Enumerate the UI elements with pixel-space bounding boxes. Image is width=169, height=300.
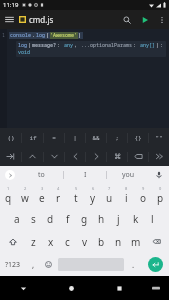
staticText: u	[106, 191, 113, 205]
button[interactable]: 4	[50, 183, 67, 207]
button[interactable]: ""	[149, 128, 169, 147]
button[interactable]: Menu	[0, 10, 19, 29]
button[interactable]: Move left	[65, 147, 85, 166]
button[interactable]: ,	[26, 253, 41, 276]
button[interactable]: n	[110, 230, 127, 253]
button[interactable]: |	[65, 128, 85, 147]
button[interactable]: 9	[135, 183, 152, 207]
staticText: 3	[41, 186, 44, 191]
button[interactable]: z	[25, 230, 42, 253]
button[interactable]: Expand suggestions	[0, 166, 20, 183]
staticText: c	[65, 235, 70, 249]
staticText: console	[10, 32, 32, 39]
staticText: (	[46, 32, 50, 39]
staticText: j	[117, 212, 120, 226]
staticText: :	[57, 42, 64, 49]
staticText: &&	[92, 134, 100, 142]
button[interactable]: l	[144, 207, 161, 230]
button[interactable]: Backspace	[128, 147, 148, 166]
button[interactable]: h	[93, 207, 110, 230]
button[interactable]: .	[126, 253, 141, 276]
button[interactable]: Tab	[0, 147, 21, 166]
staticText: if	[29, 134, 37, 142]
staticText: |	[73, 134, 77, 142]
button[interactable]: More	[149, 147, 169, 166]
button[interactable]: Delete	[144, 230, 169, 253]
staticText: 6	[92, 186, 95, 191]
staticText: 2	[24, 186, 27, 191]
staticText: y	[90, 191, 96, 205]
button[interactable]: v	[76, 230, 93, 253]
staticText: i	[125, 191, 128, 205]
staticText: ?123	[5, 260, 21, 270]
button[interactable]: ()	[0, 128, 21, 147]
button[interactable]: Move up	[22, 147, 43, 166]
staticText: :	[133, 42, 140, 49]
button[interactable]: j	[110, 207, 127, 230]
staticText: .	[32, 32, 36, 39]
button[interactable]: 8	[118, 183, 135, 207]
staticText: z	[31, 235, 36, 249]
button[interactable]: Search	[118, 11, 136, 29]
button[interactable]: &&	[86, 128, 106, 147]
button[interactable]: More options	[154, 12, 169, 27]
button[interactable]: 1	[0, 183, 16, 207]
button[interactable]: Emoji	[41, 253, 56, 276]
staticText: ,	[74, 42, 81, 49]
staticText: any	[64, 42, 74, 49]
button[interactable]: {}	[128, 128, 148, 147]
button[interactable]: ?123	[0, 253, 26, 276]
button[interactable]: Home	[47, 276, 95, 300]
button[interactable]: Shift	[0, 230, 25, 253]
button[interactable]: g	[76, 207, 93, 230]
staticText: t	[74, 191, 78, 205]
button[interactable]: I	[64, 166, 106, 183]
staticText: :	[160, 42, 164, 49]
button[interactable]: a	[8, 207, 25, 230]
button[interactable]: 0	[152, 183, 169, 207]
button[interactable]: 3	[33, 183, 50, 207]
button[interactable]: 2	[16, 183, 33, 207]
staticText: o	[140, 191, 147, 205]
staticText: cmd.js	[29, 14, 54, 25]
button[interactable]: ⌘	[107, 147, 127, 166]
button[interactable]: you	[107, 166, 149, 183]
staticText: a	[14, 212, 20, 226]
staticText: log	[18, 42, 28, 49]
staticText: ;	[115, 134, 119, 142]
button[interactable]: x	[42, 230, 59, 253]
button[interactable]: Voice input	[149, 166, 169, 183]
button[interactable]: Move right	[86, 147, 106, 166]
staticText: ,	[32, 259, 35, 270]
staticText: {}	[134, 134, 142, 142]
button[interactable]: to	[20, 166, 63, 183]
button[interactable]: f	[59, 207, 76, 230]
staticText: f	[66, 212, 70, 226]
button[interactable]: Move down	[44, 147, 64, 166]
button[interactable]: Switch keyboard	[143, 276, 169, 300]
staticText: 'Awesome'	[50, 32, 78, 39]
staticText: message?	[32, 42, 57, 49]
button[interactable]: b	[93, 230, 110, 253]
staticText: 11:19	[3, 1, 19, 9]
button[interactable]: s	[25, 207, 42, 230]
button[interactable]: if	[22, 128, 43, 147]
button[interactable]: Recent apps	[95, 276, 143, 300]
button[interactable]: Enter	[148, 257, 163, 272]
button[interactable]: Hide keyboard	[0, 276, 47, 300]
button[interactable]: =	[44, 128, 64, 147]
staticText: 7	[108, 186, 111, 191]
button[interactable]: ;	[107, 128, 127, 147]
button[interactable]: d	[42, 207, 59, 230]
staticText: any[]	[140, 42, 156, 49]
staticText: )	[78, 32, 82, 39]
button[interactable]: 6	[84, 183, 101, 207]
button[interactable]: Run	[136, 11, 154, 29]
button[interactable]: 5	[67, 183, 84, 207]
button[interactable]: m	[127, 230, 144, 253]
button[interactable]: k	[127, 207, 144, 230]
button[interactable]: c	[59, 230, 76, 253]
button[interactable]: 7	[101, 183, 118, 207]
staticText: log	[36, 32, 46, 39]
